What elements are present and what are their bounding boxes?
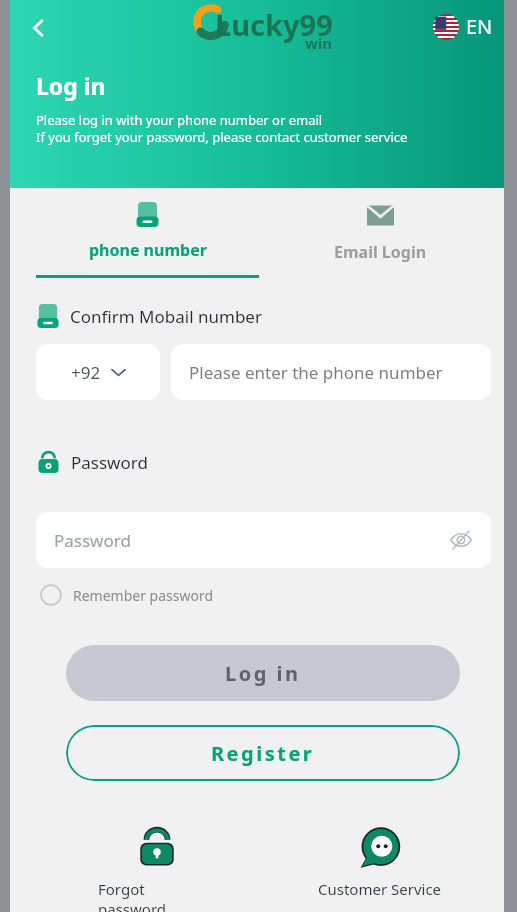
- button[interactable]: Show password: [447, 526, 475, 554]
- staticText: Email Login: [334, 241, 427, 263]
- button[interactable]: Customer Service: [310, 826, 450, 899]
- staticText: Password: [54, 529, 131, 552]
- staticText: Confirm Mobail number: [70, 305, 262, 328]
- button[interactable]: Remember password: [40, 584, 214, 606]
- staticText: If you forget your password, please cont…: [36, 128, 408, 146]
- staticText: Log in: [36, 70, 106, 101]
- staticText: Lucky99: [215, 5, 333, 44]
- staticText: win: [305, 33, 333, 53]
- staticText: +92: [71, 361, 101, 384]
- staticText: Password: [71, 451, 148, 474]
- staticText: Register: [211, 740, 315, 767]
- staticText: Please log in with your phone number or …: [36, 111, 323, 129]
- button[interactable]: Please enter the phone number: [189, 344, 491, 400]
- button[interactable]: Forgot password: [98, 826, 216, 912]
- button[interactable]: Log in: [66, 645, 460, 701]
- staticText: Remember password: [73, 586, 214, 605]
- button[interactable]: phone number: [36, 202, 259, 278]
- button[interactable]: EN: [433, 13, 493, 40]
- staticText: Customer Service: [318, 879, 442, 899]
- button[interactable]: Back: [16, 6, 60, 50]
- button[interactable]: Password: [36, 512, 491, 568]
- button[interactable]: Email Login: [269, 202, 491, 263]
- staticText: Please enter the phone number: [189, 361, 443, 384]
- staticText: Forgot password: [98, 879, 216, 912]
- staticText: Log in: [225, 660, 301, 687]
- button[interactable]: +92: [36, 344, 160, 400]
- staticText: phone number: [89, 239, 207, 261]
- button[interactable]: Register: [66, 725, 460, 781]
- staticText: EN: [466, 13, 493, 40]
